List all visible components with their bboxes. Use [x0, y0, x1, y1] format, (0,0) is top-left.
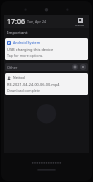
- staticText: 17:06: [7, 17, 25, 27]
- button[interactable]: Nettool: [5, 73, 88, 95]
- button[interactable]: Clear all notifications: [80, 64, 86, 70]
- staticText: Nettool: [13, 75, 26, 80]
- staticText: Other: [7, 65, 18, 70]
- button[interactable]: Android System: [5, 38, 88, 60]
- staticText: Android System: [13, 40, 41, 45]
- staticText: Settings: [75, 23, 85, 26]
- button[interactable]: Notification settings: [72, 64, 78, 70]
- staticText: Download complete: [7, 88, 40, 93]
- staticText: Important: [7, 30, 28, 36]
- staticText: Tue, Apr 24: [27, 19, 46, 24]
- staticText: Tap for more options.: [7, 53, 44, 58]
- button[interactable]: Settings: [74, 17, 86, 27]
- staticText: RE-2021-04-24-00-06-00.mp4: [7, 82, 60, 87]
- staticText: USB charging this device: [7, 47, 54, 52]
